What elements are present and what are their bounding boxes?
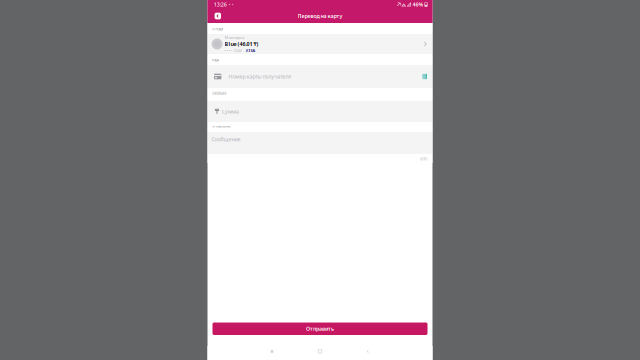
staticText: VISA (246, 48, 256, 53)
button[interactable]: Сообщение (207, 132, 432, 154)
staticText: ОТКУДА (212, 27, 223, 31)
staticText: Номер карты получателя (228, 73, 291, 80)
button[interactable]: Домой (296, 346, 344, 357)
staticText: •••• 1234 (225, 48, 242, 53)
staticText: Blue (46.01 ₸) (225, 40, 259, 48)
button[interactable]: Назад (211, 9, 224, 23)
staticText: 0/70 (420, 156, 427, 161)
staticText: ПРИМЕЧАНИЕ (212, 125, 230, 128)
button[interactable]: Номер карты получателя (207, 65, 432, 88)
staticText: СКОЛЬКО (212, 92, 226, 95)
button[interactable]: Отправить (212, 322, 427, 335)
staticText: 46% (412, 1, 423, 8)
staticText: Сообщение (212, 136, 241, 143)
staticText: 13:26 (214, 1, 227, 8)
staticText: Сумма (222, 108, 239, 115)
button[interactable]: Недавние (248, 346, 296, 357)
staticText: Отправить (306, 325, 334, 332)
button[interactable]: Сумма (207, 101, 432, 122)
button[interactable]: Мои карты (207, 34, 432, 54)
staticText: КУДА (212, 58, 219, 62)
staticText: Мои карты (225, 35, 245, 40)
staticText: Перевод на карту (297, 12, 342, 20)
